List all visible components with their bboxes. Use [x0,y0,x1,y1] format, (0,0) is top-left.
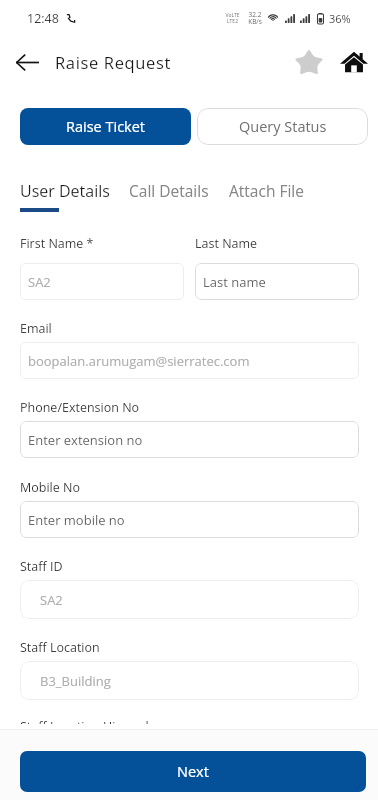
staticText: First Name * [20,235,94,252]
staticText: Staff ID [20,558,63,575]
button[interactable]: boopalan.arumugam@sierratec.com [20,342,359,379]
button[interactable]: User Details [12,180,118,200]
button[interactable]: Call Details [121,180,217,200]
staticText: boopalan.arumugam@sierratec.com [28,352,250,370]
staticText: Phone/Extension No [20,399,140,416]
staticText: Enter mobile no [28,511,125,529]
staticText: Next [177,762,209,782]
staticText: 36% [329,11,351,26]
staticText: Email [20,320,52,337]
staticText: Query Status [239,117,327,137]
staticText: Staff Location [20,639,100,656]
staticText: 32.2 KB/s [248,10,262,26]
staticText: Call Details [129,180,209,200]
button[interactable]: Favourite [290,43,328,81]
staticText: SA2 [40,591,63,609]
button[interactable]: Query Status [197,108,368,145]
staticText: Raise Ticket [66,117,146,137]
button[interactable]: Raise Ticket [20,108,191,145]
button[interactable]: Next [20,751,366,792]
staticText: B3_Building [40,672,111,690]
button[interactable]: Enter extension no [20,421,359,458]
staticText: Raise Request [55,51,172,73]
staticText: SA2 [28,273,51,291]
staticText: VoLTE LTE2 [225,12,240,25]
staticText: Mobile No [20,479,80,496]
button[interactable]: Home [335,43,373,81]
staticText: Enter extension no [28,431,143,449]
button[interactable]: B3_Building [20,661,359,700]
staticText: Attach File [229,180,304,200]
button[interactable]: Attach File [221,180,312,200]
button[interactable]: Last name [195,263,359,300]
staticText: Last name [203,273,266,291]
staticText: Staff Location Hierarchy [20,718,160,724]
button[interactable]: SA2 [20,263,184,300]
staticText: User Details [20,180,110,200]
button[interactable]: Back [9,44,45,80]
button[interactable]: SA2 [20,580,359,619]
button[interactable]: Enter mobile no [20,501,359,538]
staticText: 12:48 [27,10,59,27]
staticText: Last Name [195,235,258,252]
